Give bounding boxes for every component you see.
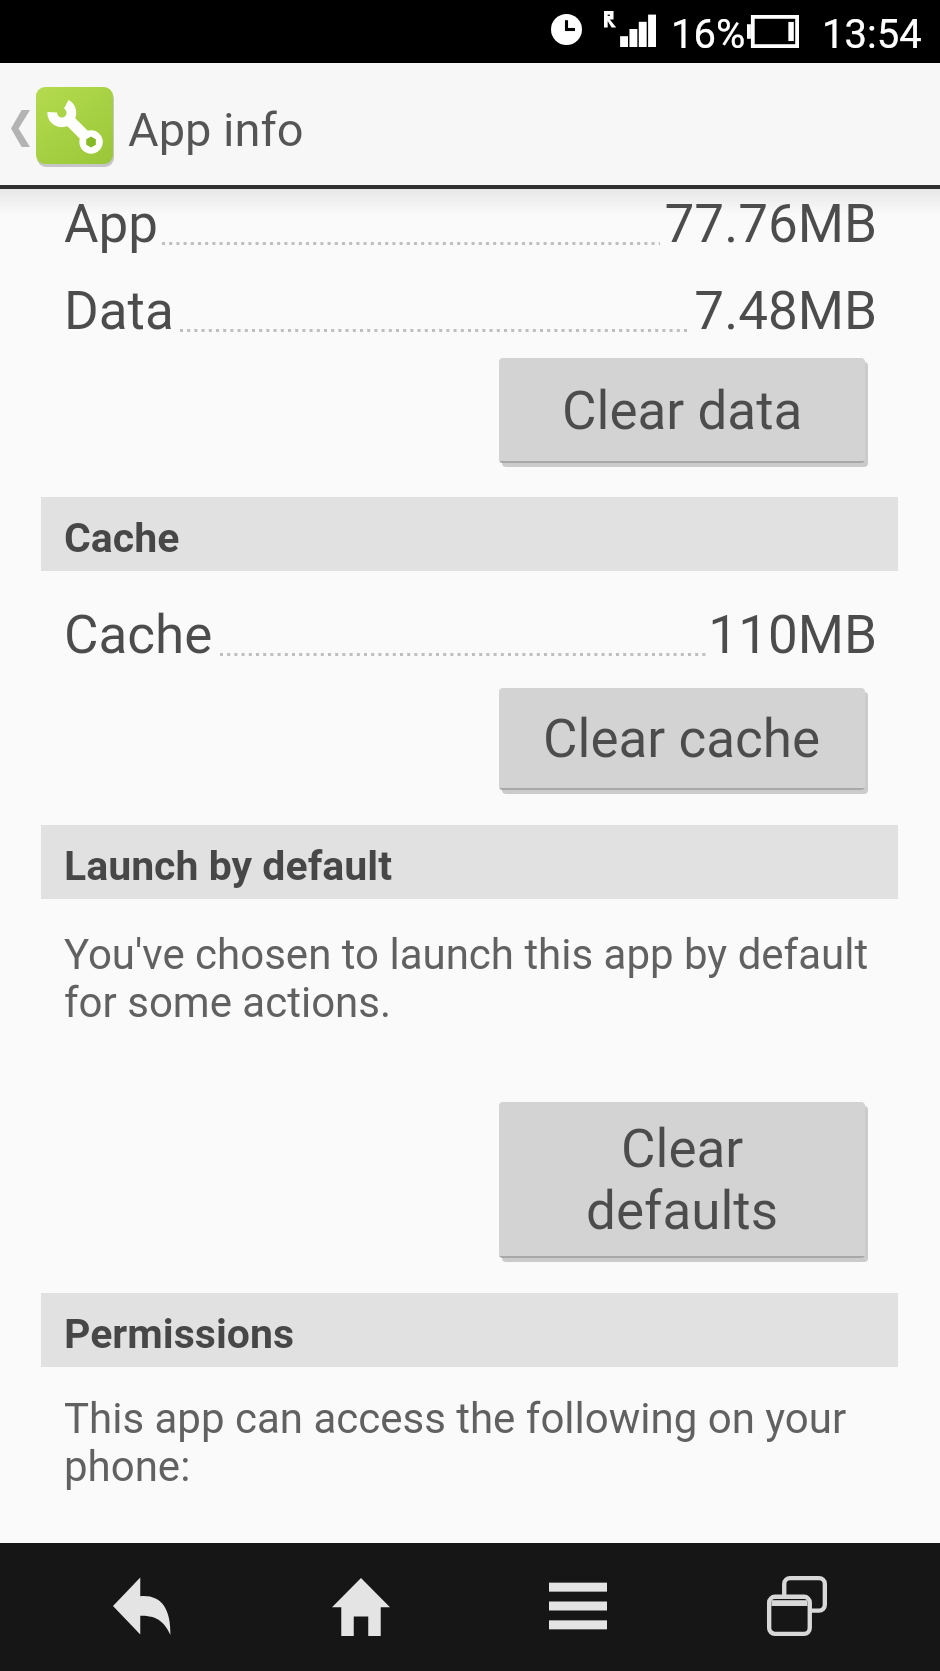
staticText: You've chosen to launch this app by defa…: [64, 930, 894, 1027]
staticText: 13:54: [822, 11, 922, 58]
staticText: Cache: [64, 514, 180, 562]
staticText: 77.76MB: [0, 193, 877, 255]
button[interactable]: Navigate up: [0, 63, 124, 185]
staticText: App: [64, 193, 159, 255]
button[interactable]: Data: [0, 262, 940, 348]
button[interactable]: Clear data: [499, 358, 865, 463]
staticText: Launch by default: [64, 842, 392, 890]
button[interactable]: Cache: [0, 586, 940, 672]
staticText: 16%: [671, 11, 746, 58]
button[interactable]: Recent apps: [687, 1543, 907, 1671]
button[interactable]: Clear: [499, 1102, 865, 1258]
staticText: 110MB: [0, 604, 877, 666]
staticText: Clear cache: [543, 708, 821, 770]
button[interactable]: App: [0, 175, 940, 261]
staticText: App info: [128, 102, 304, 157]
staticText: defaults: [586, 1180, 779, 1242]
button[interactable]: Menu: [468, 1543, 688, 1671]
button[interactable]: Home: [251, 1543, 471, 1671]
button[interactable]: Back: [32, 1543, 252, 1671]
staticText: This app can access the following on you…: [64, 1394, 894, 1491]
staticText: Data: [64, 280, 174, 342]
staticText: Clear data: [562, 380, 803, 442]
staticText: 7.48MB: [0, 280, 877, 342]
staticText: Permissions: [64, 1310, 295, 1358]
button[interactable]: Clear cache: [499, 688, 865, 790]
staticText: Clear: [621, 1118, 744, 1180]
staticText: Cache: [64, 604, 213, 666]
